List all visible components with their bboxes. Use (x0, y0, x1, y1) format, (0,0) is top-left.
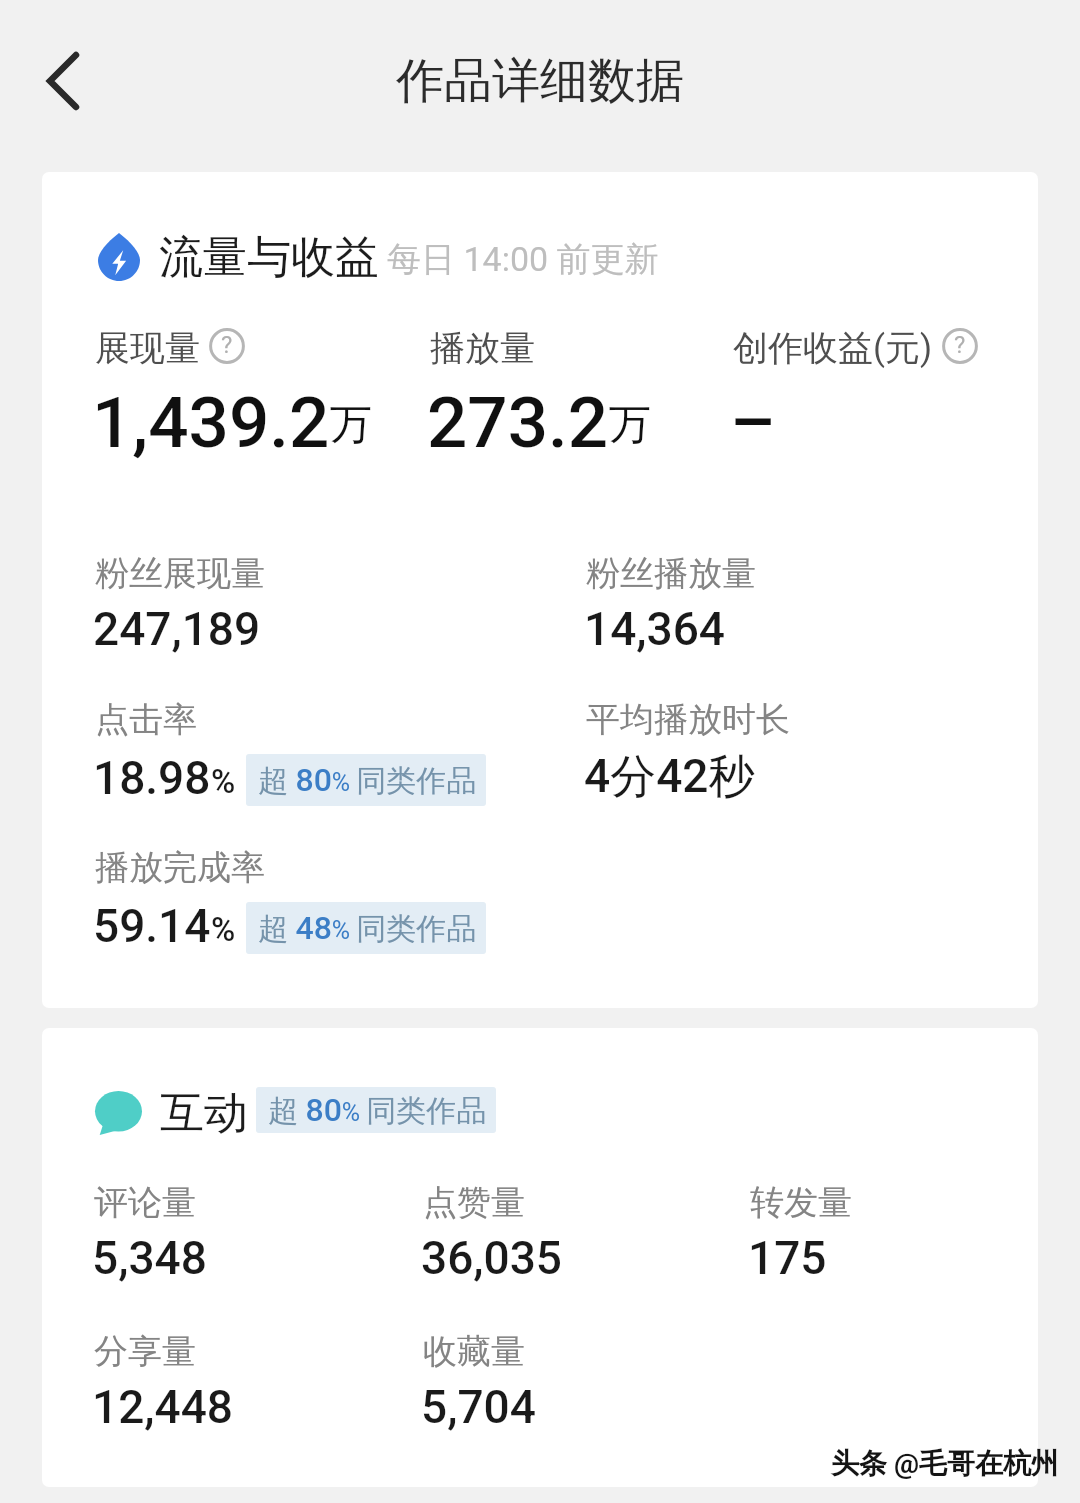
button[interactable]: 创作收益(元) (733, 326, 978, 370)
button[interactable]: 收藏量 (423, 1330, 525, 1373)
button[interactable]: 粉丝播放量 (586, 552, 756, 595)
staticText: 头条 @毛哥在杭州 (831, 1446, 1060, 1481)
staticText: 5,704 (421, 1380, 536, 1434)
staticText: 4分42秒 (584, 748, 755, 806)
button[interactable]: 转发量 (750, 1181, 852, 1224)
button[interactable]: 播放完成率 (95, 846, 265, 889)
button[interactable]: 点击率 (95, 698, 197, 741)
button[interactable]: 分享量 (94, 1330, 196, 1373)
button[interactable]: 粉丝展现量 (95, 552, 265, 595)
button[interactable]: – (730, 381, 776, 464)
staticText: 超 80% 同类作品 (258, 761, 477, 800)
staticText: 流量与收益 (159, 230, 379, 285)
button[interactable]: 创作收益(元) 说明 (942, 328, 978, 364)
button[interactable]: 1,439.2 (92, 381, 372, 464)
staticText: ? (221, 331, 233, 359)
staticText: 超 48% 同类作品 (258, 909, 477, 948)
staticText: 273.2 (427, 381, 609, 464)
button[interactable]: 超 80% 同类作品 (256, 1087, 496, 1133)
button[interactable]: 点赞量 (423, 1181, 525, 1224)
staticText: 175 (748, 1231, 827, 1285)
staticText: 超 80% 同类作品 (268, 1091, 487, 1130)
staticText: 59.14 (93, 899, 211, 953)
staticText: 作品详细数据 (0, 51, 1080, 111)
staticText: 12,448 (92, 1380, 234, 1434)
staticText: – (730, 381, 776, 464)
staticText: 互动 (160, 1086, 248, 1141)
staticText: 18.98 (93, 751, 211, 805)
staticText: 每日 14:00 前更新 (387, 238, 659, 281)
button[interactable]: 播放量 (430, 326, 535, 370)
staticText: 播放量 (430, 326, 535, 370)
button[interactable]: 超 48% 同类作品 (246, 902, 486, 954)
staticText: 247,189 (93, 602, 261, 656)
staticText: 5,348 (92, 1231, 207, 1285)
button[interactable]: 平均播放时长 (586, 698, 790, 741)
button[interactable]: Back (16, 34, 110, 128)
button[interactable]: 评论量 (94, 1181, 196, 1224)
staticText: 展现量 (95, 326, 200, 370)
staticText: 14,364 (584, 602, 726, 656)
staticText: 1,439.2 (92, 381, 330, 464)
button[interactable]: 273.2 (427, 381, 651, 464)
staticText: 创作收益(元) (733, 326, 933, 370)
staticText: ? (954, 331, 966, 359)
staticText: 万 (609, 399, 651, 452)
button[interactable]: 展现量 说明 (209, 328, 245, 364)
staticText: % (211, 762, 236, 801)
staticText: % (211, 910, 236, 949)
button[interactable]: 展现量 (95, 326, 245, 370)
button[interactable]: 超 80% 同类作品 (246, 754, 486, 806)
staticText: 万 (330, 399, 372, 452)
staticText: 36,035 (421, 1231, 563, 1285)
